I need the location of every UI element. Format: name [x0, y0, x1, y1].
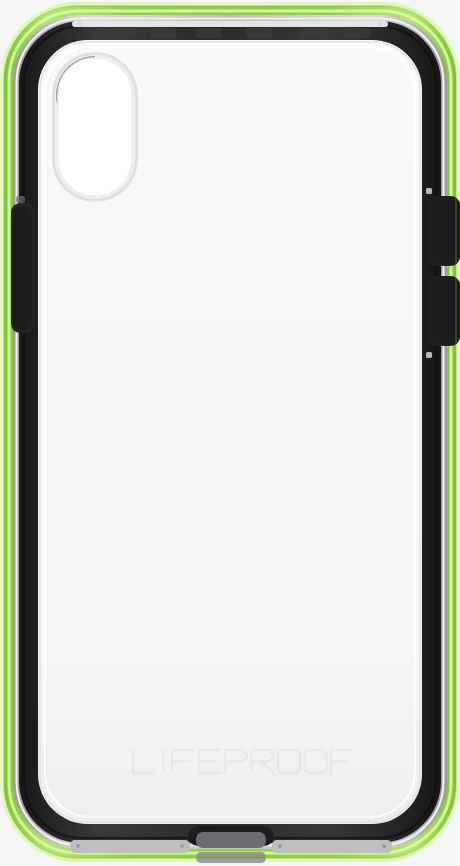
- button[interactable]: LifeProof phone case product image: [0, 0, 460, 866]
